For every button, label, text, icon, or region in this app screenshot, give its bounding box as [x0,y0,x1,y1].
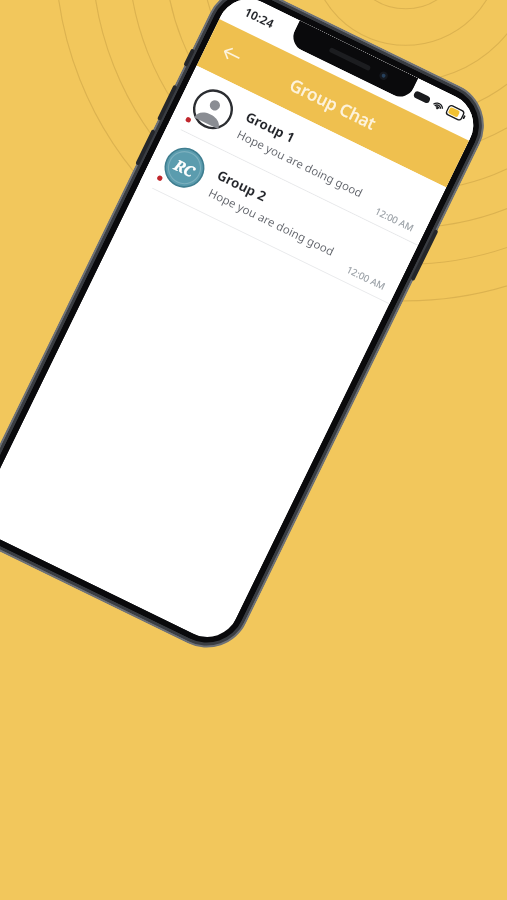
staticText: Hope you are doing good [234,126,365,201]
staticText: Group 2 [214,166,270,205]
button[interactable]: Back [204,27,258,80]
staticText: RC [171,154,199,181]
staticText: Group 1 [243,108,298,147]
button[interactable]: Group 1 [168,66,446,245]
button[interactable]: RC [140,124,418,303]
staticText: Hope you are doing good [206,185,337,260]
staticText: 12:00 AM [372,204,416,234]
staticText: 12:00 AM [344,263,387,293]
staticText: 10:24 [242,3,277,31]
staticText: Group Chat [286,73,380,134]
